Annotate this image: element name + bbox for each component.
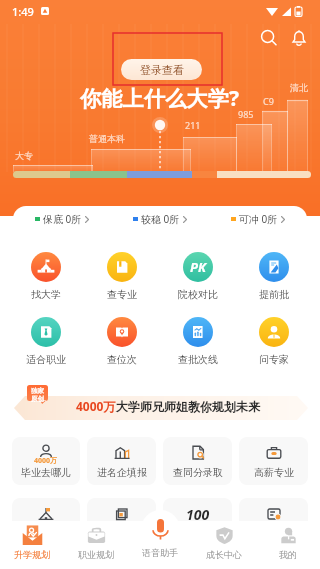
button[interactable]: 查批次线 xyxy=(160,310,236,372)
staticText: C9 xyxy=(263,95,274,107)
staticText: 清北 xyxy=(290,82,308,93)
staticText: 可冲 0所 xyxy=(239,212,278,226)
staticText: 升学规划 xyxy=(14,549,50,560)
button[interactable]: Voice assistant xyxy=(128,510,192,558)
staticText: 查同分录取 xyxy=(173,466,223,479)
button[interactable]: 较稳 0所 xyxy=(111,206,209,232)
button[interactable]: 查专业 xyxy=(84,245,160,307)
button[interactable]: Search xyxy=(257,26,281,50)
staticText: 大学师兄师姐教你规划未来 xyxy=(116,399,260,414)
staticText: 查位次 xyxy=(107,353,137,366)
staticText: 查专业 xyxy=(107,288,137,301)
staticText: 普通本科 xyxy=(89,133,125,144)
staticText: 我的 xyxy=(279,549,297,560)
button[interactable] xyxy=(12,498,80,546)
button[interactable]: 升学规划 xyxy=(0,521,64,569)
button[interactable]: 查位次 xyxy=(84,310,160,372)
button[interactable]: 100 xyxy=(163,498,232,546)
staticText: 较稳 0所 xyxy=(141,212,180,226)
staticText: 高薪专业 xyxy=(254,466,294,479)
button[interactable]: 职业规划 xyxy=(64,521,128,569)
staticText: 成长中心 xyxy=(206,549,242,560)
button[interactable]: PK xyxy=(160,245,236,307)
button[interactable] xyxy=(239,498,308,546)
button[interactable]: 问专家 xyxy=(236,310,312,372)
staticText: 大专 xyxy=(15,150,33,161)
button[interactable]: 成长中心 xyxy=(192,521,256,569)
staticText: 原创 xyxy=(31,395,44,403)
staticText: 语音助手 xyxy=(142,547,178,558)
button[interactable]: 查同分录取 xyxy=(163,437,232,485)
button[interactable]: 适合职业 xyxy=(8,310,84,372)
staticText: 4000万 xyxy=(76,398,116,414)
staticText: 1:49 xyxy=(12,4,34,19)
staticText: 找大学 xyxy=(31,288,61,301)
button[interactable]: 进名企填报 xyxy=(87,437,156,485)
button[interactable]: 独家 xyxy=(0,387,320,423)
button[interactable]: 保底 0所 xyxy=(13,206,111,232)
staticText: 4000万 xyxy=(34,456,58,466)
button[interactable]: 找大学 xyxy=(8,245,84,307)
button[interactable] xyxy=(87,498,156,546)
button[interactable]: 4000万 xyxy=(12,437,80,485)
staticText: 毕业去哪儿 xyxy=(21,466,71,479)
staticText: 职业规划 xyxy=(78,549,114,560)
staticText: 211 xyxy=(185,119,201,131)
staticText: 985 xyxy=(238,108,254,120)
staticText: 保底 0所 xyxy=(43,212,82,226)
button[interactable]: 提前批 xyxy=(236,245,312,307)
staticText: 进名企填报 xyxy=(97,466,147,479)
staticText: 100 xyxy=(186,505,210,524)
staticText: 你能上什么大学? xyxy=(80,84,240,113)
button[interactable]: 我的 xyxy=(256,521,320,569)
staticText: 提前批 xyxy=(259,288,289,301)
staticText: 登录查看 xyxy=(140,63,184,77)
button[interactable]: 高薪专业 xyxy=(239,437,308,485)
staticText: 适合职业 xyxy=(26,353,66,366)
staticText: 院校对比 xyxy=(178,288,218,301)
button[interactable]: Notifications xyxy=(287,26,311,50)
button[interactable]: 登录查看 xyxy=(121,59,202,80)
staticText: PK xyxy=(190,258,206,276)
button[interactable]: 可冲 0所 xyxy=(209,206,307,232)
staticText: 问专家 xyxy=(259,353,289,366)
staticText: 独家 xyxy=(31,387,44,395)
staticText: 查批次线 xyxy=(178,353,218,366)
